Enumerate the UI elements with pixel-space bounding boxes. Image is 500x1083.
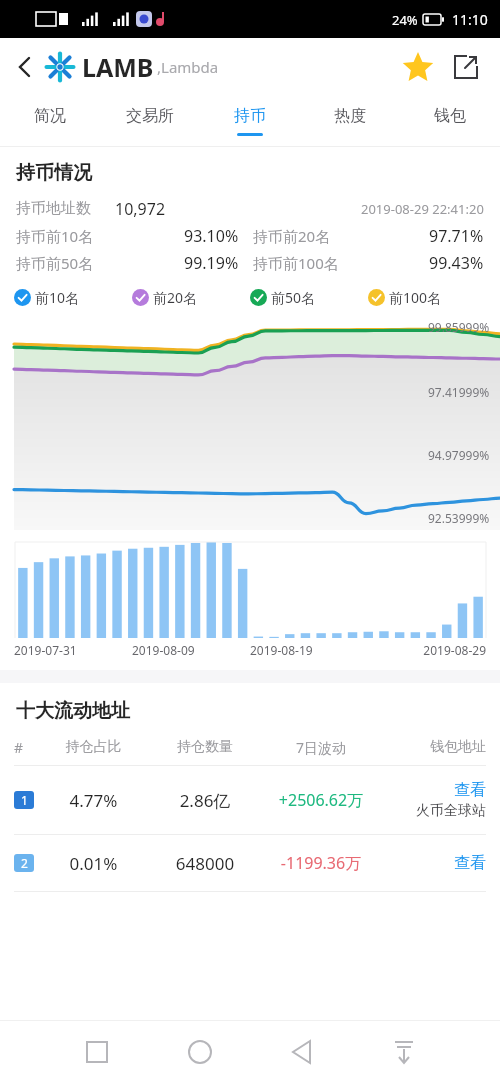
button[interactable]: 前50名 <box>250 288 368 307</box>
button[interactable]: 钱包 <box>400 96 500 146</box>
button[interactable]: 前100名 <box>368 288 486 307</box>
staticText: 简况 <box>34 106 66 126</box>
staticText: 持币前20名 <box>253 226 331 246</box>
button[interactable]: 前20名 <box>132 288 250 307</box>
staticText: 648000 <box>147 852 263 875</box>
staticText: 99.85999% <box>428 319 490 335</box>
staticText: 2019-08-29 22:41:20 <box>361 200 484 218</box>
staticText: 10,972 <box>115 198 166 220</box>
staticText: 持币 <box>234 106 266 126</box>
button[interactable]: 简况 <box>0 96 100 146</box>
button[interactable]: 1 <box>0 766 500 835</box>
button[interactable]: Favorite <box>398 47 438 87</box>
staticText: LAMB <box>82 50 154 84</box>
staticText: 2 <box>21 855 28 871</box>
staticText: 11:10 <box>452 10 488 29</box>
staticText: +2506.62万 <box>263 789 379 811</box>
staticText: 99.43% <box>429 252 484 274</box>
staticText: 钱包地址 <box>379 738 486 756</box>
staticText: 7日波动 <box>263 738 379 757</box>
staticText: 持币前10名 <box>16 226 94 246</box>
staticText: 97.71% <box>429 225 484 247</box>
button[interactable]: Back <box>279 1029 325 1075</box>
button[interactable]: 前10名 <box>14 288 132 307</box>
staticText: 持仓数量 <box>147 738 263 756</box>
staticText: 2019-08-19 <box>250 642 368 658</box>
staticText: 前50名 <box>271 288 316 307</box>
staticText: 92.53999% <box>428 510 490 526</box>
button[interactable]: Home <box>177 1029 223 1075</box>
staticText: 4.77% <box>40 789 147 812</box>
button[interactable]: 2 <box>0 835 500 892</box>
staticText: 2019-08-09 <box>132 642 250 658</box>
button[interactable]: Share <box>446 47 486 87</box>
staticText: 97.41999% <box>428 384 490 400</box>
staticText: 持仓占比 <box>40 738 147 756</box>
button[interactable]: 持币 <box>200 96 300 146</box>
staticText: 持币地址数 <box>16 199 91 218</box>
staticText: -1199.36万 <box>263 852 379 874</box>
staticText: 钱包 <box>434 106 466 126</box>
staticText: 查看 <box>379 853 486 873</box>
button[interactable]: 交易所 <box>100 96 200 146</box>
staticText: 十大流动地址 <box>16 699 130 723</box>
button[interactable]: Hide keyboard <box>381 1029 427 1075</box>
staticText: 查看 <box>454 780 486 800</box>
staticText: 火币全球站 <box>416 802 486 820</box>
button[interactable]: Recents <box>74 1029 120 1075</box>
staticText: 0.01% <box>40 852 147 875</box>
button[interactable]: Back <box>4 47 44 87</box>
staticText: # <box>14 738 40 757</box>
staticText: ,Lambda <box>157 57 219 77</box>
staticText: 持币前50名 <box>16 253 94 273</box>
staticText: 持币情况 <box>16 161 92 185</box>
staticText: 2019-07-31 <box>14 642 132 658</box>
staticText: 99.19% <box>184 252 239 274</box>
staticText: 前100名 <box>389 288 442 307</box>
staticText: 前10名 <box>35 288 80 307</box>
staticText: 24% <box>392 11 418 29</box>
staticText: 前20名 <box>153 288 198 307</box>
staticText: 93.10% <box>184 225 239 247</box>
staticText: 94.97999% <box>428 447 490 463</box>
staticText: 热度 <box>334 106 366 126</box>
staticText: 2019-08-29 <box>368 642 486 658</box>
staticText: 2.86亿 <box>147 789 263 812</box>
staticText: 1 <box>21 792 28 808</box>
staticText: 持币前100名 <box>253 253 339 273</box>
button[interactable]: 热度 <box>300 96 400 146</box>
staticText: 交易所 <box>126 106 174 126</box>
